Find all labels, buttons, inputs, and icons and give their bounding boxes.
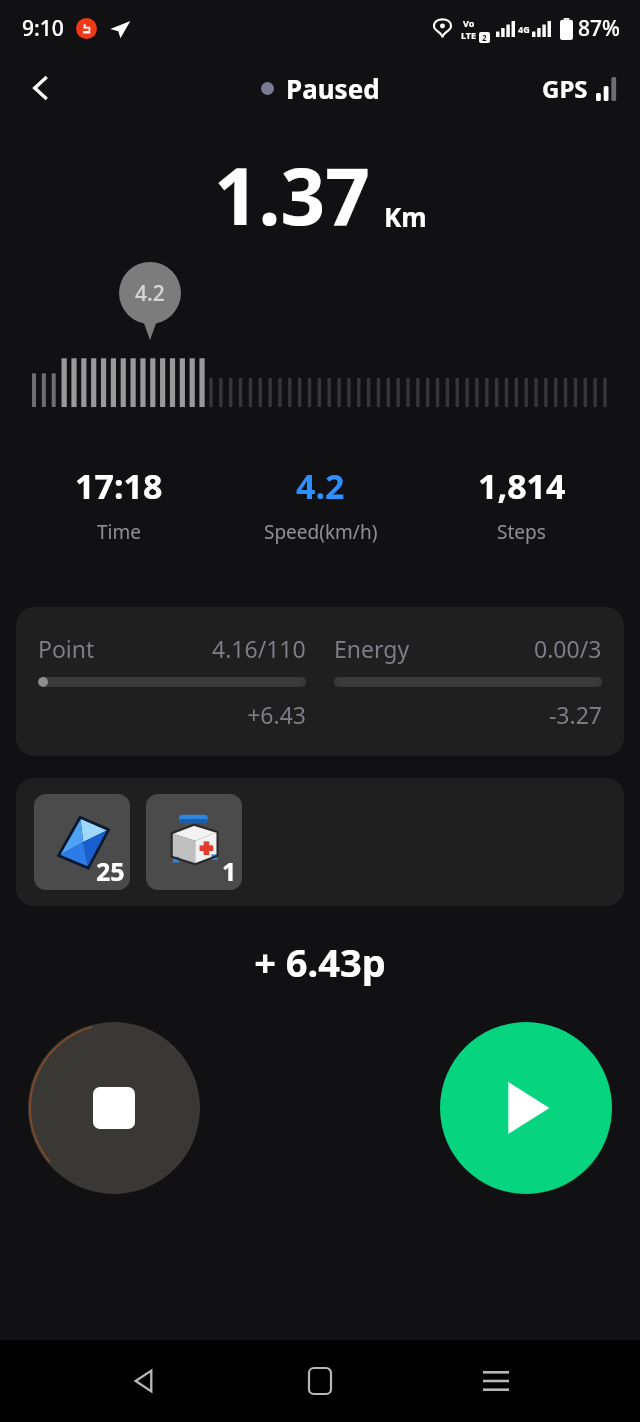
staticText: 4.2 [135, 279, 165, 308]
staticText: Energy [334, 633, 410, 664]
button[interactable]: Back [14, 61, 68, 115]
staticText: 2 [482, 32, 487, 43]
staticText: Steps [497, 519, 546, 545]
staticText: + 6.43p [0, 936, 640, 988]
staticText: 0.00/3 [534, 633, 602, 664]
staticText: 1,814 [478, 463, 566, 509]
staticText: 4G [518, 23, 530, 35]
button[interactable]: 1,814 [421, 463, 622, 545]
button[interactable]: Home [288, 1349, 352, 1413]
staticText: 87% [578, 14, 620, 43]
button[interactable]: Point [16, 607, 624, 756]
staticText: 17:18 [75, 463, 163, 509]
staticText: 1.37 [214, 142, 370, 248]
staticText: 9:10 [22, 14, 64, 43]
button[interactable]: 4.2 [220, 463, 421, 545]
staticText: +6.43 [38, 699, 306, 730]
staticText: 25 [96, 854, 125, 888]
staticText: Km [384, 199, 427, 234]
staticText: Point [38, 633, 95, 664]
staticText: 4.16/110 [212, 633, 306, 664]
staticText: Speed(km/h) [264, 519, 378, 545]
button[interactable]: Back [112, 1349, 176, 1413]
staticText: 1 [222, 854, 237, 888]
staticText: LTE [461, 29, 477, 41]
staticText: -3.27 [334, 699, 602, 730]
button[interactable]: Resume [440, 1022, 612, 1194]
staticText: 4.2 [296, 463, 345, 509]
button[interactable]: GPS signal [542, 72, 620, 105]
staticText: Vo [463, 17, 475, 29]
button[interactable]: 17:18 [18, 463, 220, 545]
staticText: Time [97, 519, 141, 545]
staticText: GPS [542, 72, 588, 105]
button[interactable]: Item x25 [34, 794, 130, 890]
button[interactable]: Menu [464, 1349, 528, 1413]
staticText: Paused [286, 71, 380, 106]
button[interactable]: Item x1 [146, 794, 242, 890]
button[interactable]: Stop [28, 1022, 200, 1194]
